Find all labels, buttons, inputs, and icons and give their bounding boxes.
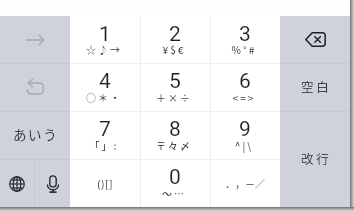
staticText: 4 (70, 69, 140, 94)
button[interactable]: Undo (0, 64, 70, 111)
button[interactable]: 7 (70, 111, 140, 159)
staticText: <=> (209, 90, 279, 104)
staticText: 8 (140, 117, 210, 142)
staticText: 〜… (139, 186, 209, 200)
staticText: [ (105, 176, 109, 190)
staticText: ^|\ (209, 138, 279, 152)
button[interactable]: あいう (0, 112, 70, 159)
button[interactable]: 0 (140, 159, 210, 207)
staticText: ] (109, 176, 113, 190)
button[interactable]: ( (70, 159, 140, 207)
button[interactable]: 空白 (280, 64, 350, 111)
staticText: 5 (140, 69, 210, 94)
staticText: ○＊・ (69, 90, 139, 104)
staticText: 2 (140, 22, 210, 47)
button[interactable]: 3 (210, 16, 280, 63)
staticText: ☆♪→ (69, 42, 139, 56)
staticText: ／ (255, 176, 265, 190)
staticText: 7 (70, 117, 140, 142)
button[interactable]: 2 (140, 16, 210, 63)
button[interactable]: 1 (70, 16, 140, 63)
button[interactable]: 6 (210, 63, 280, 111)
staticText: 改行 (301, 149, 332, 167)
staticText: 6 (210, 69, 280, 94)
staticText: － (245, 176, 255, 190)
staticText: 0 (140, 165, 210, 190)
staticText: ， (235, 176, 245, 190)
button[interactable]: Change keyboard language (0, 160, 34, 207)
staticText: ¥$€ (139, 42, 209, 56)
button[interactable]: 5 (140, 63, 210, 111)
button[interactable]: 改行 (280, 112, 350, 207)
button[interactable]: 4 (70, 63, 140, 111)
staticText: あいう (13, 124, 59, 144)
staticText: ＋×÷ (139, 90, 209, 104)
button[interactable]: Backspace (280, 16, 350, 63)
button[interactable]: ． (210, 159, 280, 207)
button[interactable]: Move cursor right (0, 16, 70, 63)
staticText: 1 (70, 22, 140, 47)
staticText: %°# (209, 42, 279, 56)
staticText: 〒々〆 (139, 138, 209, 152)
staticText: 空白 (301, 77, 332, 95)
button[interactable]: Voice input (35, 160, 70, 207)
button[interactable]: 9 (210, 111, 280, 159)
button[interactable]: 8 (140, 111, 210, 159)
staticText: 9 (210, 117, 280, 142)
staticText: ( (97, 176, 101, 190)
staticText: ) (101, 176, 105, 190)
staticText: 「」: (69, 138, 139, 152)
staticText: ． (225, 176, 235, 190)
staticText: 3 (210, 22, 280, 47)
